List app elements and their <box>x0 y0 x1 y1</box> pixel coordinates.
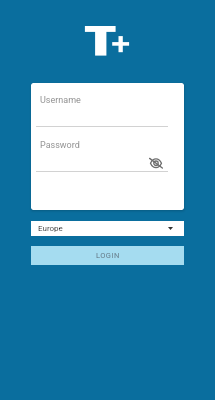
button[interactable]: LOGIN <box>31 246 184 265</box>
button[interactable]: Username <box>36 92 168 127</box>
staticText: Europe <box>38 224 63 233</box>
button[interactable]: Europe <box>31 221 184 236</box>
staticText: LOGIN <box>96 251 120 260</box>
button[interactable]: Password <box>36 137 168 172</box>
button[interactable]: Show password <box>146 152 166 172</box>
staticText: Password <box>40 140 80 151</box>
staticText: Username <box>40 95 81 106</box>
